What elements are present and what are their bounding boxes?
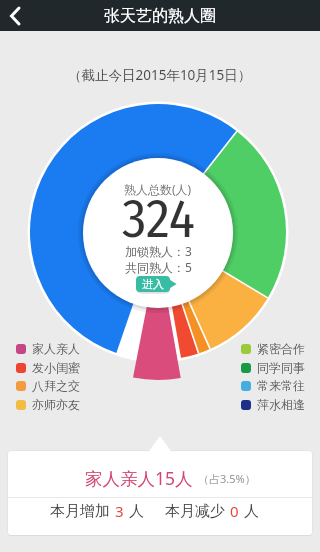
staticText: 紧密合作	[257, 341, 305, 356]
staticText: 八拜之交	[32, 378, 80, 393]
button[interactable]: 常来常往	[241, 378, 305, 393]
staticText: 本月减少	[165, 502, 225, 521]
button[interactable]: 家人亲人15人	[85, 455, 256, 501]
button[interactable]: 同学同事	[241, 360, 305, 375]
button[interactable]: 紧密合作	[241, 341, 305, 356]
staticText: （截止今日2015年10月15日）	[68, 66, 252, 84]
button[interactable]	[0, 0, 40, 31]
staticText: 常来常往	[257, 378, 305, 393]
staticText: 共同熟人：5	[125, 259, 192, 275]
staticText: 熟人总数(人)	[124, 181, 192, 197]
staticText: 加锁熟人：3	[125, 243, 192, 259]
button[interactable]: 发小闺蜜	[16, 360, 80, 375]
staticText: 萍水相逢	[257, 397, 305, 412]
button[interactable]: 八拜之交	[16, 378, 80, 393]
button[interactable]: 进入	[136, 276, 177, 292]
staticText: 本月增加	[50, 502, 110, 521]
staticText: 人	[129, 502, 144, 521]
staticText: 发小闺蜜	[32, 360, 80, 375]
staticText: 家人亲人	[32, 341, 80, 356]
staticText: 进入	[142, 277, 164, 291]
staticText: 家人亲人15人	[85, 466, 193, 490]
staticText: 324	[122, 187, 195, 252]
staticText: 同学同事	[257, 360, 305, 375]
staticText: 人	[244, 502, 259, 521]
button[interactable]: 家人亲人	[16, 341, 80, 356]
staticText: 张天艺的熟人圈	[104, 6, 216, 26]
button[interactable]: 本月减少	[165, 501, 259, 521]
staticText: 亦师亦友	[32, 397, 80, 412]
button[interactable]: 本月增加	[50, 501, 144, 521]
button[interactable]: 萍水相逢	[241, 397, 305, 412]
button[interactable]: 亦师亦友	[16, 397, 80, 412]
staticText: 3	[115, 501, 124, 521]
staticText: （占3.5%）	[198, 471, 256, 486]
staticText: 0	[230, 501, 239, 521]
